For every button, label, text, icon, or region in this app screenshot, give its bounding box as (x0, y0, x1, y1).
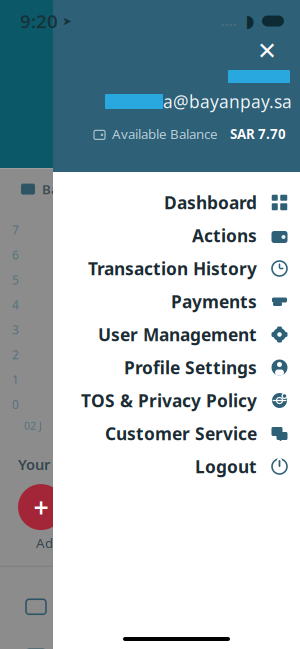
staticText: Baya (42, 180, 74, 198)
staticText: Your pay (18, 455, 80, 474)
staticText: 1 (12, 371, 19, 387)
staticText: a@bayanpay.sa (163, 90, 292, 113)
staticText: 3 (12, 322, 19, 338)
staticText: Available Balance (112, 125, 218, 143)
staticText: + (33, 489, 48, 525)
button[interactable]: Actions (53, 219, 300, 252)
staticText: Payments (171, 290, 257, 313)
staticText: Transaction History (88, 257, 257, 280)
staticText: Actions (192, 224, 257, 247)
staticText: .... (221, 12, 237, 30)
staticText: 7 (12, 222, 19, 238)
button[interactable]: Payments (53, 285, 300, 318)
staticText: 6 (12, 247, 19, 263)
staticText: User Management (98, 323, 257, 346)
staticText: Add (36, 534, 61, 552)
staticText: 9:20 (20, 9, 58, 33)
button[interactable]: Profile Settings (53, 351, 300, 384)
staticText: TOS & Privacy Policy (81, 389, 257, 412)
button[interactable]: TOS & Privacy Policy (53, 384, 300, 417)
staticText: 5 (12, 272, 19, 288)
staticText: ✕ (257, 37, 277, 65)
staticText: 0 (12, 396, 19, 412)
staticText: SAR 7.70 (230, 125, 286, 143)
staticText: ➤ (62, 14, 72, 28)
staticText: ◗ (245, 11, 254, 31)
staticText: 2 (12, 347, 19, 362)
staticText: 4 (12, 297, 19, 313)
staticText: 02 J (24, 418, 42, 433)
staticText: Logout (195, 455, 257, 478)
button[interactable]: Logout (53, 450, 300, 483)
button[interactable]: Close menu (250, 36, 284, 66)
button[interactable]: Transaction History (53, 252, 300, 285)
button[interactable]: User Management (53, 318, 300, 351)
staticText: Profile Settings (124, 356, 257, 379)
button[interactable]: Dashboard (53, 186, 300, 219)
button[interactable]: Customer Service (53, 417, 300, 450)
staticText: Customer Service (105, 422, 257, 445)
staticText: Dashboard (164, 191, 257, 214)
